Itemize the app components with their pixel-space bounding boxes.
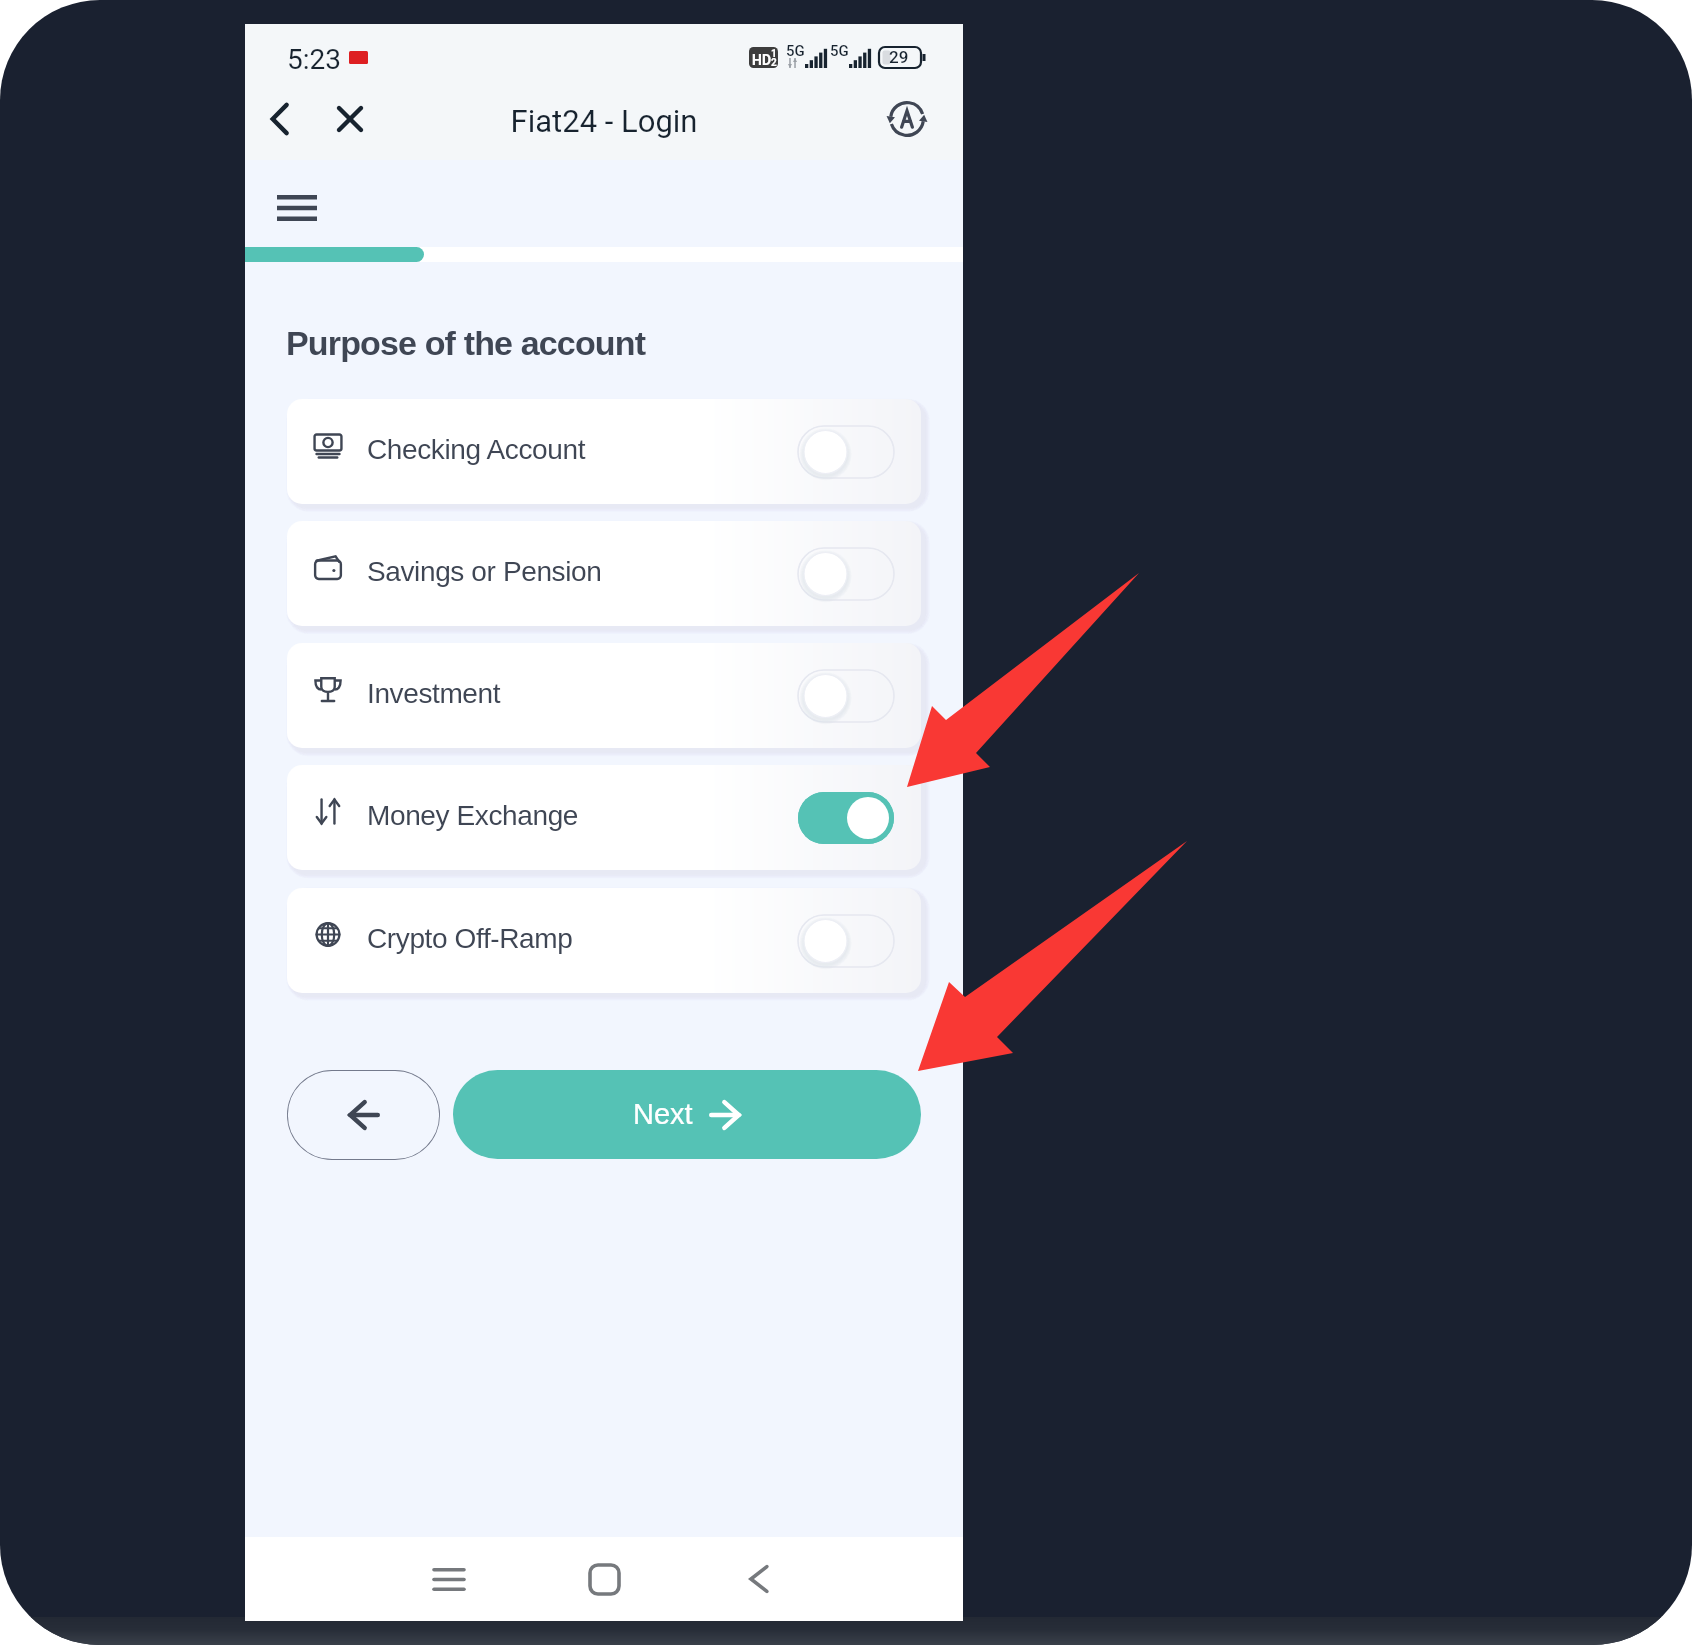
button[interactable]: Home <box>562 1537 646 1621</box>
staticText: Savings or Pension <box>367 556 602 587</box>
staticText: 5G <box>786 42 805 60</box>
button[interactable]: Menu <box>259 170 335 246</box>
button[interactable]: Next <box>453 1070 921 1159</box>
staticText: 2 <box>771 57 777 68</box>
button[interactable]: Investment <box>287 643 921 748</box>
button[interactable]: Reader mode <box>877 89 937 149</box>
staticText: 1 <box>771 48 777 60</box>
staticText: HD <box>752 52 771 68</box>
staticText: Investment <box>367 678 501 709</box>
staticText: 29 <box>889 47 909 67</box>
button[interactable]: Back <box>249 89 309 149</box>
button[interactable]: Close <box>320 89 380 149</box>
staticText: Money Exchange <box>367 800 579 831</box>
button[interactable]: Recent apps <box>407 1537 491 1621</box>
staticText: Checking Account <box>367 434 586 465</box>
staticText: Fiat24 - Login <box>245 103 963 139</box>
staticText: 5:23 <box>287 43 341 76</box>
staticText: Crypto Off-Ramp <box>367 923 573 954</box>
button[interactable]: Crypto Off-Ramp <box>287 888 921 993</box>
button[interactable]: Savings or Pension <box>287 521 921 626</box>
button[interactable]: Previous step <box>287 1070 440 1160</box>
button[interactable]: Checking Account <box>287 399 921 504</box>
button[interactable]: Back <box>716 1537 800 1621</box>
staticText: Next <box>633 1098 693 1130</box>
staticText: Purpose of the account <box>286 324 646 362</box>
button[interactable]: Money Exchange <box>287 765 921 870</box>
staticText: 5G <box>830 42 849 60</box>
